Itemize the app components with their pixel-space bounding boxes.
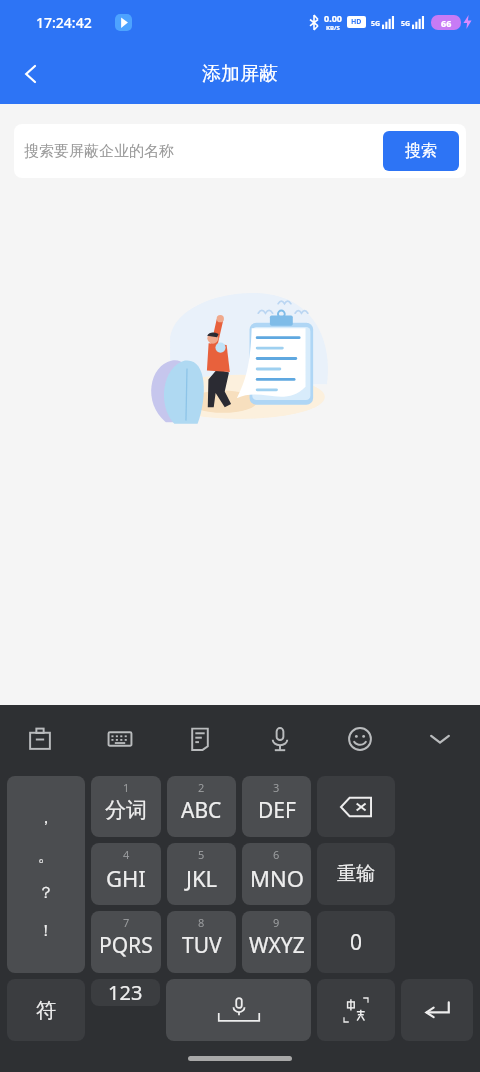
- button[interactable]: 搜索: [383, 131, 459, 171]
- staticText: 3: [273, 780, 280, 795]
- button[interactable]: 3: [242, 776, 311, 837]
- staticText: 5G: [401, 19, 411, 29]
- button[interactable]: 8: [167, 911, 236, 973]
- button[interactable]: 4: [91, 843, 161, 905]
- staticText: 符: [36, 998, 56, 1023]
- staticText: 4: [123, 847, 130, 862]
- staticText: 8: [198, 915, 205, 930]
- button[interactable]: Clipboard: [0, 705, 80, 773]
- staticText: GHI: [106, 863, 146, 893]
- staticText: 添加屏蔽: [202, 62, 278, 86]
- staticText: 9: [273, 915, 280, 930]
- staticText: 分词: [105, 797, 147, 823]
- staticText: JKL: [186, 863, 218, 893]
- staticText: 7: [123, 915, 130, 930]
- button[interactable]: 5: [167, 843, 236, 905]
- staticText: 6: [273, 847, 280, 862]
- staticText: 66: [441, 17, 452, 29]
- button[interactable]: 9: [242, 911, 311, 973]
- button[interactable]: Switch Chinese English: [317, 979, 395, 1041]
- button[interactable]: 0: [317, 911, 395, 973]
- staticText: PQRS: [99, 931, 153, 960]
- button[interactable]: Enter: [401, 979, 473, 1041]
- staticText: ，: [38, 808, 54, 828]
- staticText: 17:24:42: [36, 13, 92, 32]
- staticText: 1: [123, 780, 130, 795]
- staticText: 。: [38, 846, 54, 866]
- button[interactable]: Hide keyboard: [400, 705, 480, 773]
- staticText: TUV: [182, 931, 222, 960]
- button[interactable]: Backspace: [317, 776, 395, 837]
- staticText: HD: [351, 17, 362, 27]
- button[interactable]: 符: [7, 979, 85, 1041]
- button[interactable]: Emoji: [320, 705, 400, 773]
- staticText: WXYZ: [249, 931, 305, 960]
- staticText: KB/S: [326, 24, 340, 32]
- staticText: MNO: [250, 863, 304, 893]
- staticText: 2: [198, 780, 205, 795]
- staticText: ？: [38, 883, 54, 903]
- button[interactable]: 6: [242, 843, 311, 905]
- staticText: 重输: [337, 862, 375, 886]
- staticText: 123: [108, 979, 143, 1006]
- staticText: 5G: [371, 19, 381, 29]
- button[interactable]: Voice input: [240, 705, 320, 773]
- button[interactable]: 重输: [317, 843, 395, 905]
- button[interactable]: Notes: [160, 705, 240, 773]
- staticText: 搜索要屏蔽企业的名称: [24, 142, 174, 161]
- button[interactable]: 2: [167, 776, 236, 837]
- staticText: 搜索: [405, 141, 437, 161]
- button[interactable]: Space, voice input: [166, 979, 311, 1041]
- staticText: ABC: [181, 796, 222, 825]
- staticText: 5: [198, 847, 205, 862]
- button[interactable]: Keyboard layout: [80, 705, 160, 773]
- button[interactable]: Back: [8, 51, 54, 97]
- button[interactable]: 7: [91, 911, 161, 973]
- staticText: DEF: [258, 796, 296, 825]
- button[interactable]: 123: [91, 979, 160, 1006]
- button[interactable]: ，: [7, 776, 85, 973]
- staticText: 0.00: [324, 12, 342, 24]
- staticText: ！: [38, 921, 54, 941]
- staticText: 0: [350, 928, 363, 957]
- button[interactable]: 1: [91, 776, 161, 837]
